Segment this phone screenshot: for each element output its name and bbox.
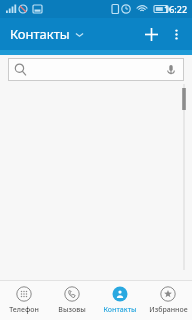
button[interactable]: Контакты — [0, 25, 92, 43]
staticText: Избранное — [149, 305, 188, 315]
staticText: Вызовы — [58, 305, 86, 315]
button[interactable]: Add contact — [137, 20, 165, 48]
button[interactable]: Избранное — [144, 281, 192, 320]
staticText: Контакты — [10, 25, 70, 43]
button[interactable]: Контакты — [96, 281, 144, 320]
button[interactable]: More options — [165, 23, 187, 45]
button[interactable]: Voice search — [8, 58, 184, 81]
staticText: Контакты — [103, 305, 137, 315]
button[interactable]: Вызовы — [48, 281, 96, 320]
button[interactable]: Телефон — [0, 281, 48, 320]
button[interactable]: Voice search — [164, 63, 178, 77]
staticText: 16:22 — [164, 3, 188, 15]
staticText: Телефон — [9, 305, 39, 315]
